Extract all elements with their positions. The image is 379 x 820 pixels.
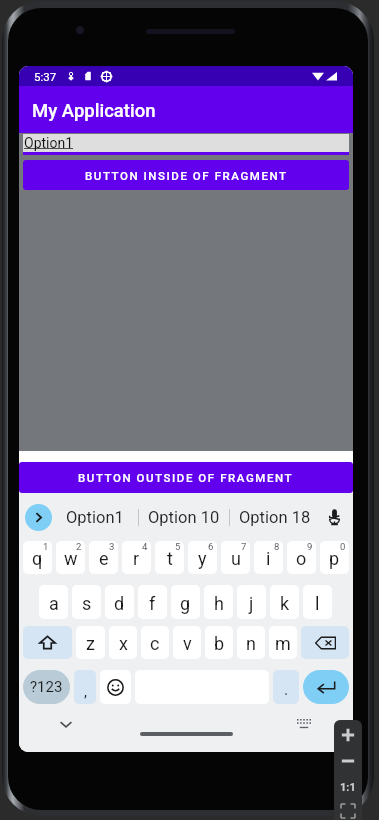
staticText: ?123 [30, 678, 63, 696]
button[interactable]: p [320, 541, 349, 574]
button[interactable]: Switch keyboard [293, 713, 315, 735]
staticText: p [329, 548, 340, 569]
staticText: z [86, 633, 95, 654]
staticText: j [249, 593, 254, 614]
button[interactable]: Voice input [320, 501, 348, 533]
staticText: 8 [274, 541, 280, 552]
staticText: 7 [241, 541, 247, 552]
button[interactable]: w [56, 541, 85, 574]
staticText: w [64, 548, 78, 569]
button[interactable]: , [74, 670, 96, 704]
staticText: 1 [43, 541, 49, 552]
staticText: g [180, 593, 191, 614]
button[interactable]: y [188, 541, 217, 574]
button[interactable]: Enter [303, 670, 349, 704]
button[interactable]: Expand suggestions [25, 504, 52, 531]
staticText: t [167, 548, 173, 569]
staticText: n [246, 633, 256, 654]
staticText: y [198, 548, 207, 569]
button[interactable]: Emoji [100, 670, 131, 704]
button[interactable]: i [254, 541, 283, 574]
staticText: My Application [32, 100, 156, 122]
staticText: b [214, 633, 225, 654]
button[interactable]: ?123 [23, 670, 70, 704]
button[interactable]: BUTTON OUTSIDE OF FRAGMENT [19, 462, 353, 493]
button[interactable]: u [221, 541, 250, 574]
staticText: s [82, 593, 92, 614]
button[interactable]: Option1 [52, 499, 138, 535]
button[interactable]: n [237, 626, 265, 659]
staticText: 0 [340, 541, 346, 552]
button[interactable]: . [273, 670, 299, 704]
staticText: , [84, 683, 87, 701]
button[interactable]: x [109, 626, 137, 659]
staticText: 1:1 [340, 781, 356, 794]
button[interactable]: v [173, 626, 201, 659]
button[interactable]: r [122, 541, 151, 574]
button[interactable]: c [141, 626, 169, 659]
staticText: k [280, 593, 290, 614]
staticText: Option1 [24, 135, 74, 151]
staticText: r [133, 548, 140, 569]
staticText: 2 [76, 541, 82, 552]
button[interactable]: q [23, 541, 52, 574]
staticText: o [296, 548, 307, 569]
staticText: h [214, 593, 224, 614]
staticText: m [275, 633, 291, 654]
button[interactable]: b [205, 626, 233, 659]
staticText: 5:37 [34, 70, 57, 83]
staticText: BUTTON OUTSIDE OF FRAGMENT [78, 471, 294, 484]
button[interactable]: z [76, 626, 105, 659]
staticText: u [231, 548, 241, 569]
staticText: e [99, 548, 109, 569]
staticText: l [315, 593, 320, 614]
button[interactable]: f [138, 585, 167, 619]
staticText: c [150, 633, 160, 654]
button[interactable]: s [72, 585, 101, 619]
button[interactable]: e [89, 541, 118, 574]
staticText: q [32, 548, 43, 569]
button[interactable]: o [287, 541, 316, 574]
button[interactable]: BUTTON INSIDE OF FRAGMENT [23, 160, 349, 190]
staticText: f [149, 593, 156, 614]
button[interactable]: Option 18 [230, 499, 320, 535]
staticText: a [49, 593, 59, 614]
button[interactable]: Option 10 [139, 499, 229, 535]
button[interactable]: Hide keyboard [55, 715, 77, 733]
button[interactable]: h [204, 585, 233, 619]
button[interactable]: t [155, 541, 184, 574]
staticText: d [114, 593, 125, 614]
staticText: BUTTON INSIDE OF FRAGMENT [85, 169, 288, 182]
staticText: Option 18 [239, 508, 311, 527]
staticText: v [183, 633, 192, 654]
button[interactable]: d [105, 585, 134, 619]
button[interactable]: k [270, 585, 299, 619]
button[interactable]: l [303, 585, 332, 619]
button[interactable]: m [269, 626, 297, 659]
button[interactable]: j [237, 585, 266, 619]
button[interactable]: g [171, 585, 200, 619]
staticText: x [119, 633, 128, 654]
button[interactable]: Shift [23, 626, 72, 659]
button[interactable]: Option1 [23, 134, 349, 152]
staticText: 9 [307, 541, 313, 552]
staticText: 5 [175, 541, 181, 552]
staticText: Option 10 [148, 508, 220, 527]
staticText: . [284, 680, 289, 699]
staticText: 6 [208, 541, 214, 552]
staticText: 3 [109, 541, 115, 552]
button[interactable]: a [39, 585, 68, 619]
button[interactable]: Backspace [301, 626, 349, 659]
staticText: i [266, 548, 271, 569]
staticText: Option1 [66, 508, 124, 527]
staticText: 4 [142, 541, 148, 552]
